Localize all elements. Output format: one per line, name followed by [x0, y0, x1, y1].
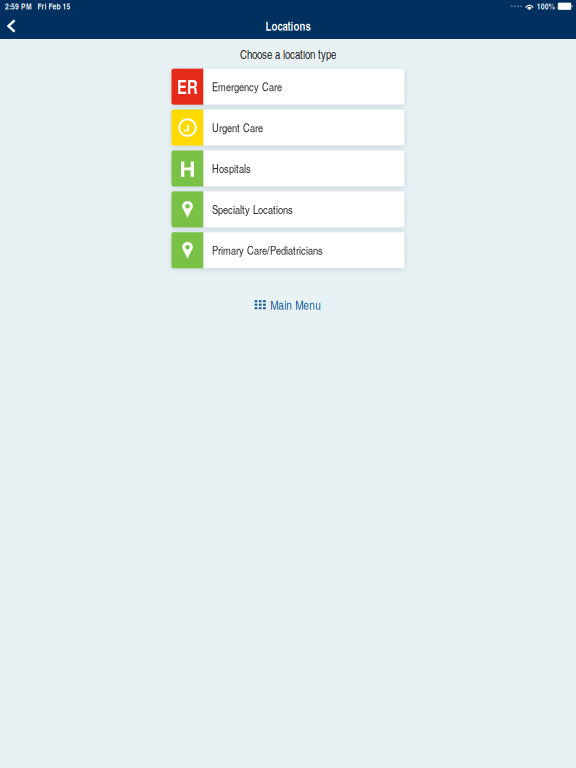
- staticText: Locations: [265, 18, 310, 34]
- staticText: 100%: [537, 0, 555, 12]
- staticText: Specialty Locations: [212, 202, 293, 217]
- staticText: Main Menu: [270, 296, 321, 313]
- button[interactable]: Specialty Locations: [171, 191, 404, 227]
- button[interactable]: Urgent Care: [171, 110, 404, 146]
- staticText: 2:59 PM: [5, 0, 32, 12]
- button[interactable]: H: [171, 150, 404, 186]
- button[interactable]: Back: [0, 14, 22, 38]
- button[interactable]: Primary Care/Pediatricians: [171, 232, 404, 268]
- button[interactable]: Main Menu: [247, 290, 329, 319]
- staticText: H: [179, 153, 195, 184]
- staticText: ER: [177, 74, 198, 100]
- staticText: Emergency Care: [212, 79, 282, 94]
- staticText: Choose a location type: [240, 46, 336, 62]
- staticText: Primary Care/Pediatricians: [212, 242, 323, 258]
- staticText: Fri Feb 15: [37, 0, 70, 12]
- staticText: Hospitals: [212, 161, 251, 176]
- button[interactable]: ER: [171, 69, 404, 105]
- staticText: Urgent Care: [212, 120, 263, 135]
